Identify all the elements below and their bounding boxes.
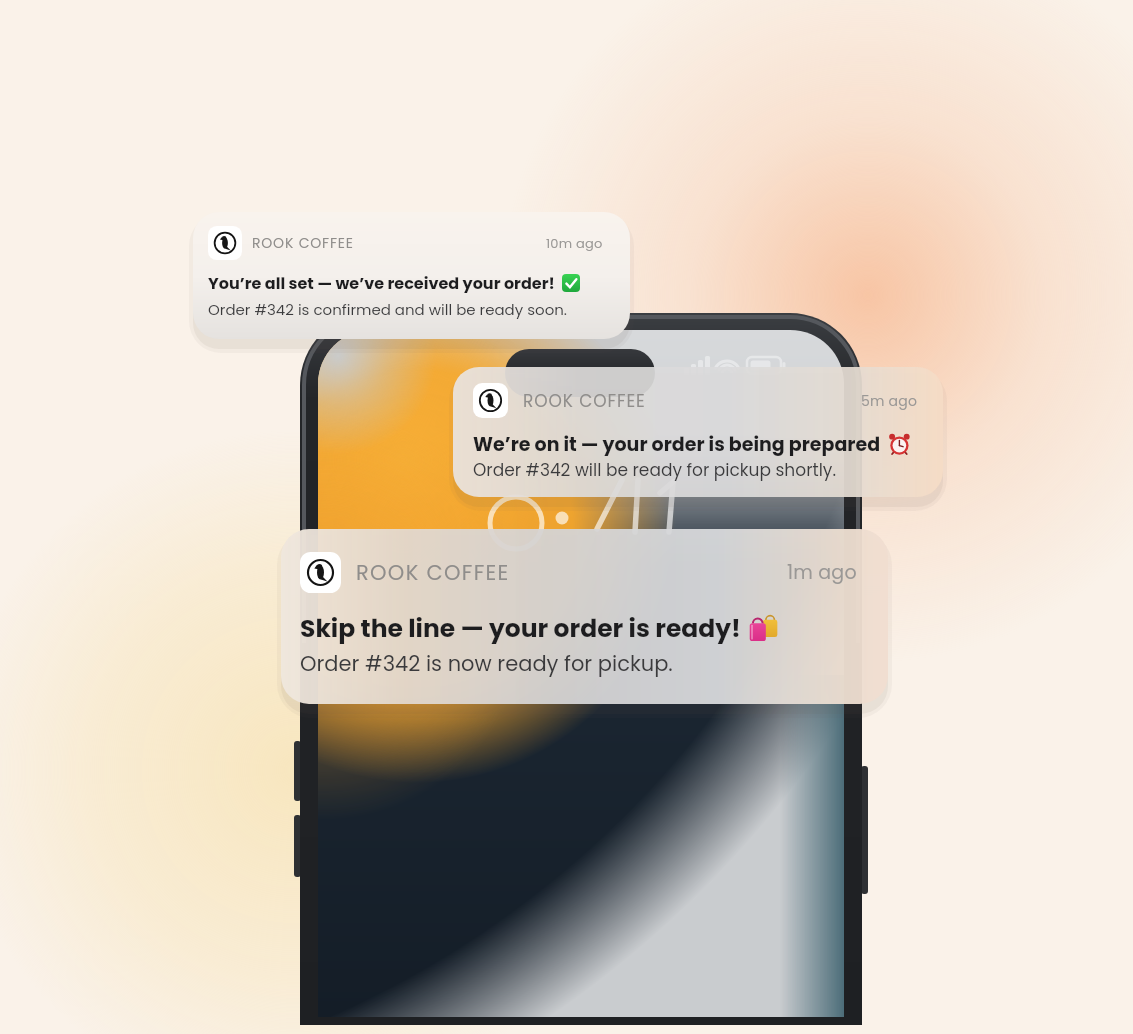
staticText: Order #342 is now ready for pickup. (300, 649, 673, 678)
button[interactable]: ROOK COFFEE (281, 529, 888, 704)
staticText: ROOK COFFEE (356, 558, 510, 587)
staticText: Order #342 is confirmed and will be read… (208, 299, 567, 320)
staticText: You’re all set — we’ve received your ord… (208, 272, 555, 294)
staticText: 5m ago (861, 391, 918, 411)
staticText: We’re on it — your order is being prepar… (473, 431, 881, 458)
button[interactable]: ROOK COFFEE (453, 367, 943, 497)
staticText: Order #342 will be ready for pickup shor… (473, 458, 836, 482)
staticText: 10m ago (546, 234, 603, 252)
staticText: ROOK COFFEE (523, 389, 646, 413)
button[interactable]: ROOK COFFEE (193, 212, 630, 339)
staticText: ROOK COFFEE (252, 233, 354, 253)
staticText: 1m ago (787, 559, 857, 586)
staticText: Skip the line — your order is ready! (300, 611, 741, 646)
